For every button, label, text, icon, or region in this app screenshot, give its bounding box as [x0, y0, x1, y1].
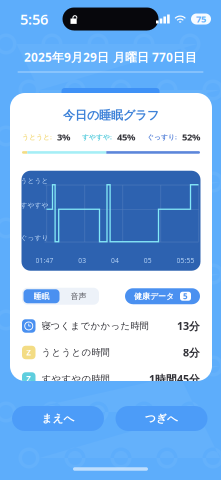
staticText: すやすや:: [82, 132, 112, 141]
staticText: 01:47: [35, 256, 53, 265]
staticText: Z: [26, 374, 31, 384]
staticText: 睡眠: [33, 291, 49, 301]
staticText: 3%: [57, 131, 70, 143]
staticText: 04: [111, 256, 119, 265]
staticText: ぐっすり:: [147, 132, 177, 141]
staticText: Z: [26, 347, 31, 358]
staticText: 1時間45分: [149, 372, 200, 386]
staticText: つぎへ: [145, 412, 178, 425]
staticText: 8分: [183, 345, 200, 360]
staticText: 75: [196, 13, 206, 25]
button[interactable]: 健康データ: [125, 288, 200, 304]
staticText: すやすや: [20, 201, 48, 209]
staticText: うとうとの時間: [41, 347, 109, 358]
staticText: 5: [183, 291, 188, 301]
staticText: 2025年9月29日 月曜日 770日目: [24, 49, 197, 65]
button[interactable]: 寝つくまでかかった時間: [22, 313, 200, 339]
staticText: 45%: [117, 131, 135, 143]
staticText: うとうと:: [22, 132, 52, 141]
staticText: ぐっすり: [20, 234, 48, 242]
staticText: すやすやの時間: [41, 373, 109, 385]
staticText: 03: [78, 256, 86, 265]
button[interactable]: Z: [22, 366, 200, 392]
staticText: 05:55: [176, 256, 194, 265]
button[interactable]: Z: [22, 339, 200, 366]
staticText: 寝つくまでかかった時間: [41, 320, 148, 332]
staticText: 52%: [182, 131, 200, 143]
button[interactable]: 音声: [59, 289, 97, 303]
staticText: まえへ: [41, 412, 74, 425]
staticText: 5:56: [20, 9, 48, 29]
button[interactable]: まえへ: [12, 406, 104, 431]
staticText: 健康データ: [134, 291, 174, 301]
staticText: 音声: [70, 291, 86, 301]
staticText: 05: [144, 256, 152, 265]
staticText: 13分: [177, 319, 200, 333]
staticText: 今日の睡眠グラフ: [63, 108, 159, 123]
button[interactable]: 睡眠: [23, 289, 59, 303]
button[interactable]: つぎへ: [115, 406, 207, 431]
staticText: うとうと: [20, 177, 48, 185]
